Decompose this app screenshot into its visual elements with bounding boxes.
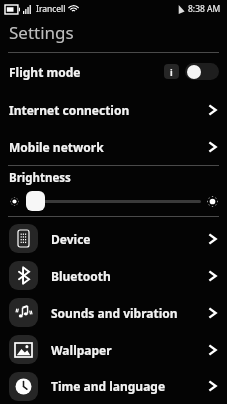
staticText: Internet connection bbox=[9, 102, 130, 118]
staticText: Flight mode bbox=[9, 64, 81, 80]
button[interactable]: Mobile network bbox=[0, 128, 227, 165]
button[interactable]: Sounds and vibration bbox=[0, 294, 227, 331]
button[interactable]: Internet connection bbox=[0, 91, 227, 128]
staticText: Sounds and vibration bbox=[51, 305, 178, 321]
staticText: Wallpaper bbox=[51, 342, 112, 358]
staticText: Brightness bbox=[9, 170, 71, 186]
button[interactable]: Wallpaper bbox=[0, 331, 227, 368]
staticText: Mobile network bbox=[9, 139, 104, 155]
staticText: Settings bbox=[9, 21, 74, 44]
staticText: Irancell bbox=[36, 3, 66, 15]
staticText: Time and language bbox=[51, 378, 166, 394]
staticText: Device bbox=[51, 231, 91, 247]
staticText: 8:38 AM bbox=[188, 3, 221, 15]
button[interactable]: Flight mode bbox=[0, 53, 227, 90]
button[interactable]: Bluetooth bbox=[0, 257, 227, 294]
button[interactable]: Flight mode toggle bbox=[185, 63, 219, 80]
button[interactable]: Device bbox=[0, 220, 227, 257]
staticText: Bluetooth bbox=[51, 268, 111, 284]
staticText: i bbox=[170, 66, 173, 78]
button[interactable]: Time and language bbox=[0, 368, 227, 404]
button[interactable]: Info about flight mode bbox=[164, 64, 179, 79]
button[interactable]: Brightness slider bbox=[24, 191, 203, 211]
